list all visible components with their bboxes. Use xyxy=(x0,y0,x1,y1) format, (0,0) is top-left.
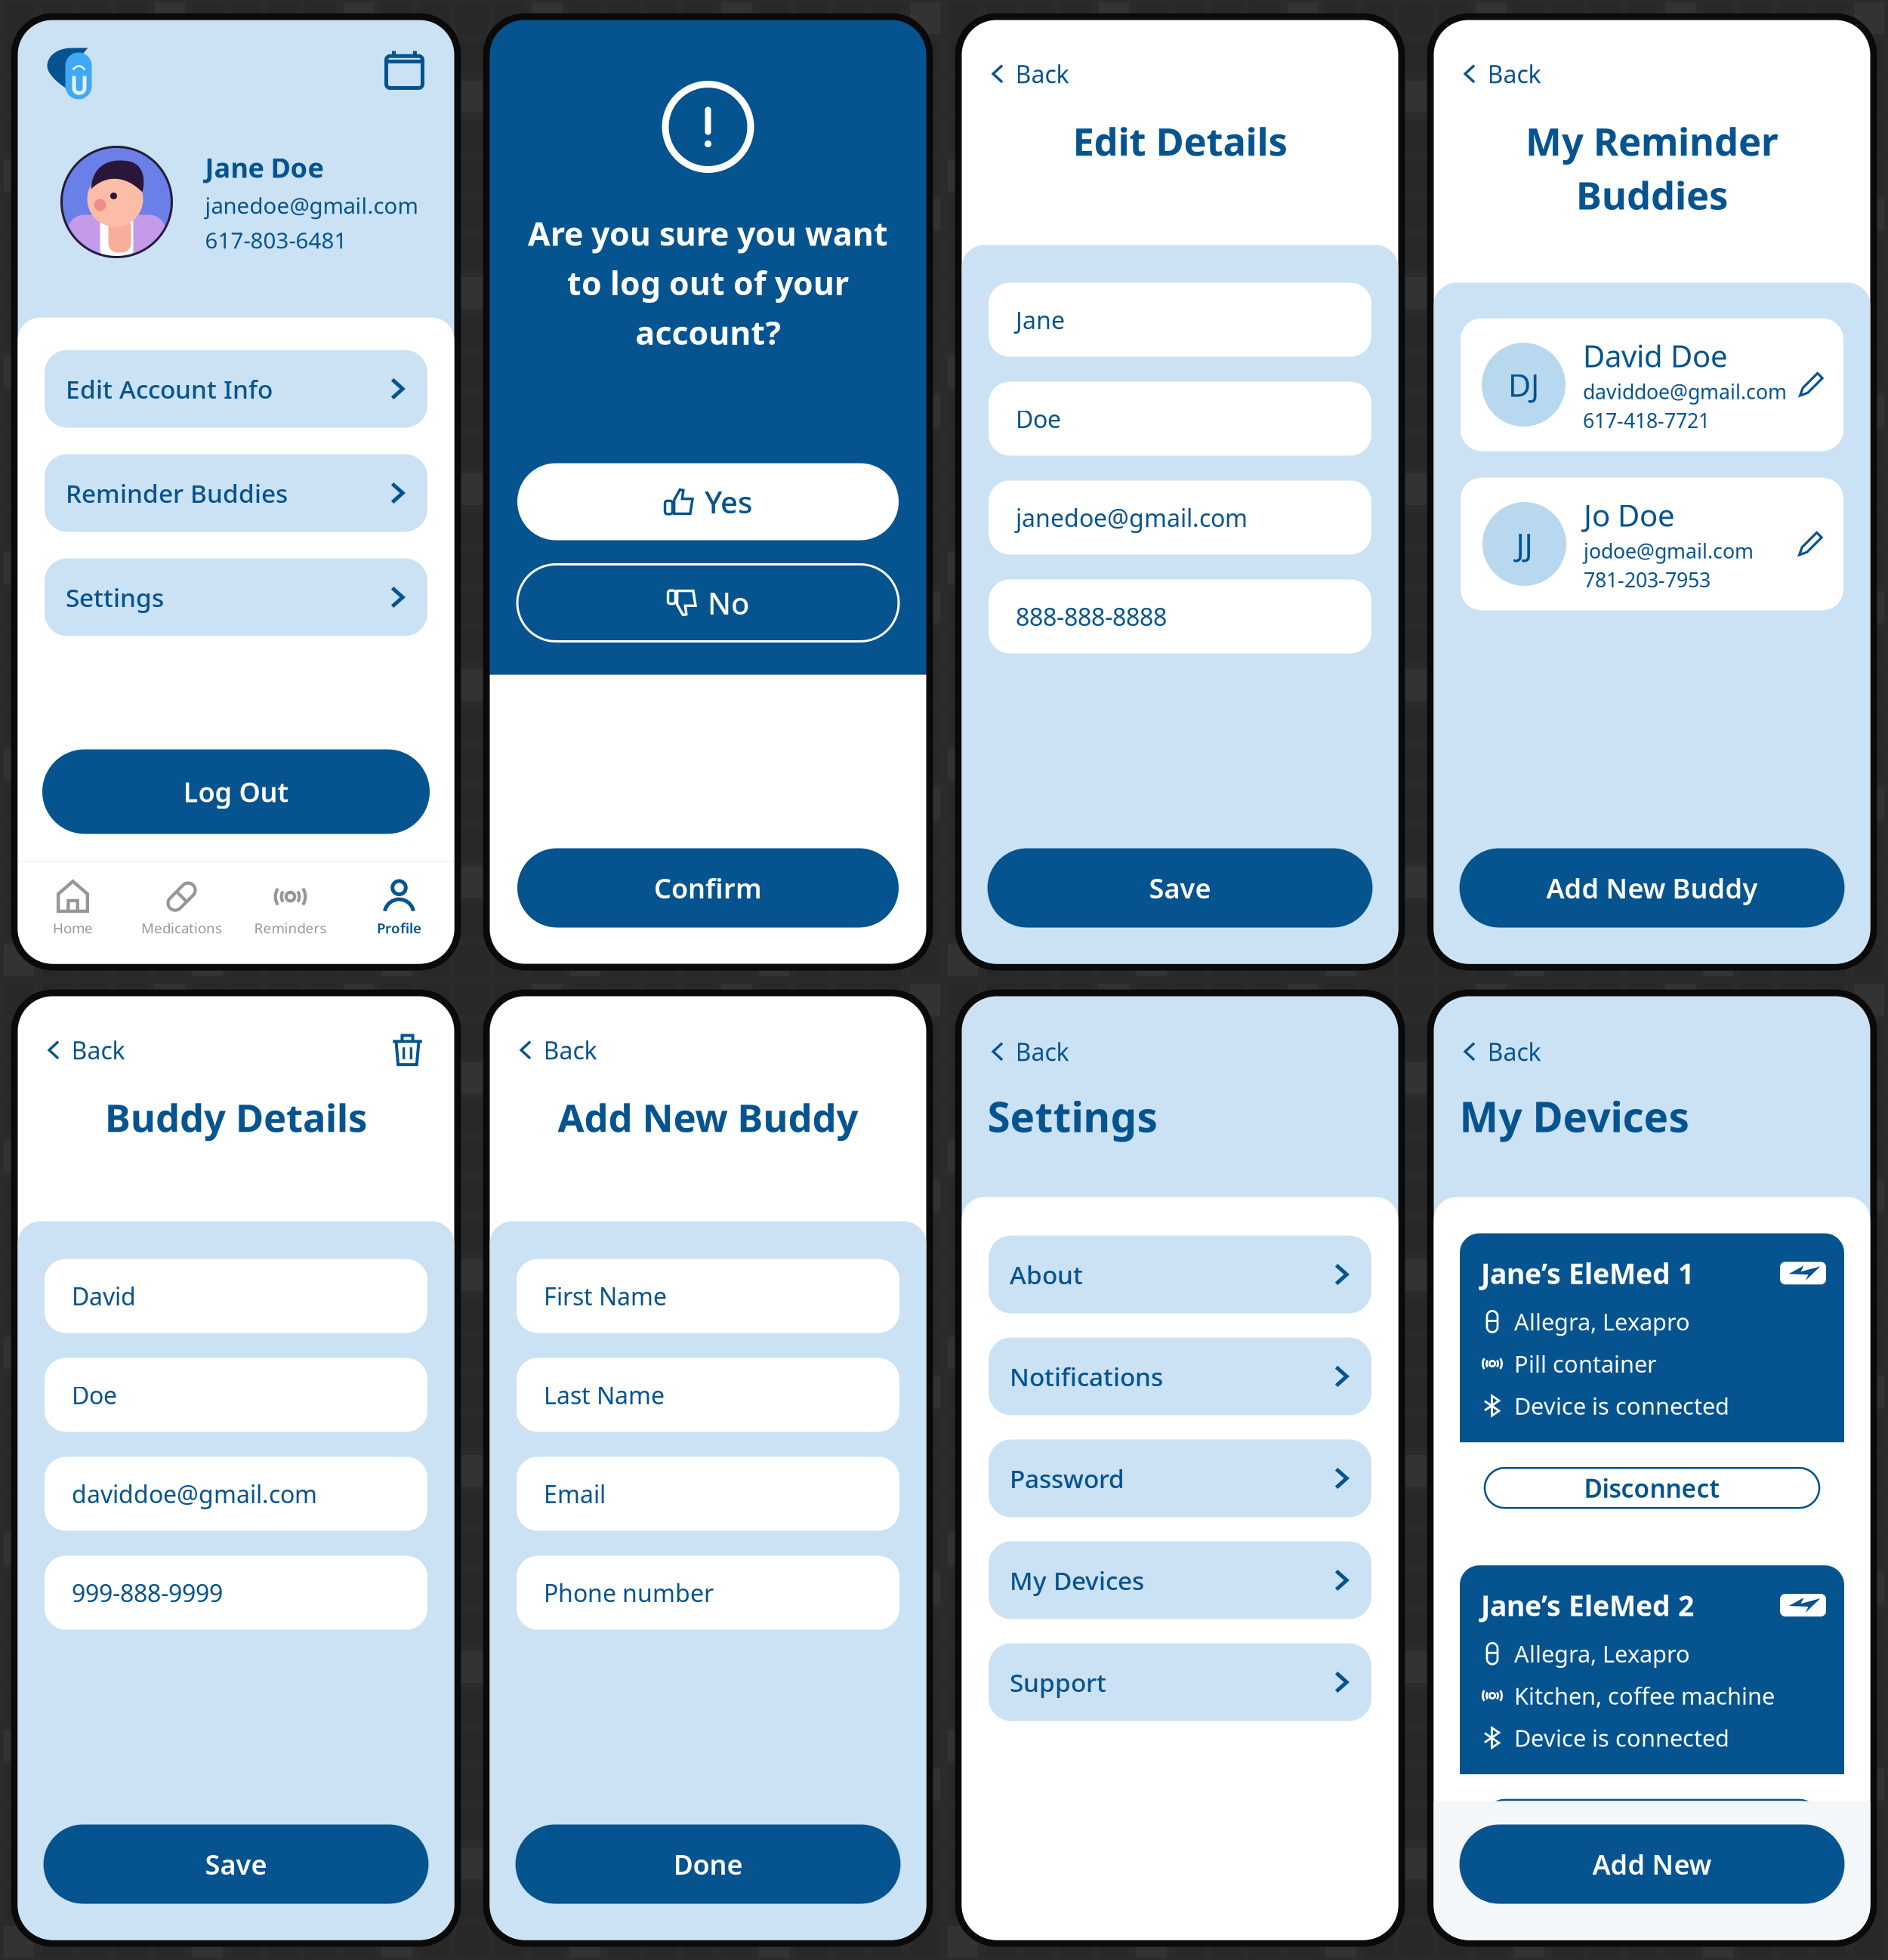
staticText: Pill container xyxy=(1514,1348,1657,1379)
staticText: Profile xyxy=(377,919,421,937)
staticText: Allegra, Lexapro xyxy=(1514,1306,1690,1337)
button[interactable]: Calendar xyxy=(386,52,423,88)
button[interactable]: DJ xyxy=(1461,318,1843,451)
staticText: Save xyxy=(1149,870,1211,906)
staticText: Notifications xyxy=(1010,1360,1163,1393)
button[interactable]: Edit buddy xyxy=(1793,367,1829,403)
staticText: Add New Buddy xyxy=(1546,870,1758,906)
button[interactable]: Add New Buddy xyxy=(1459,848,1845,928)
staticText: Support xyxy=(1010,1665,1106,1699)
staticText: Settings xyxy=(66,581,164,614)
staticText: Phone number xyxy=(544,1577,714,1609)
button[interactable]: Profile xyxy=(345,872,453,945)
staticText: daviddoe@gmail.com xyxy=(1583,378,1787,405)
button[interactable]: Back xyxy=(1459,1032,1541,1071)
staticText: janedoe@gmail.com xyxy=(205,191,418,220)
staticText: Disconnect xyxy=(1584,1803,1720,1837)
button[interactable]: About xyxy=(989,1236,1371,1313)
button[interactable]: Save xyxy=(987,848,1373,928)
button[interactable]: Reminder Buddies xyxy=(45,454,427,532)
staticText: David Doe xyxy=(1583,336,1728,376)
staticText: Doe xyxy=(1016,403,1061,435)
button[interactable]: No xyxy=(517,564,899,641)
staticText: No xyxy=(708,583,749,623)
staticText: Back xyxy=(1487,58,1541,90)
staticText: Back xyxy=(543,1034,597,1066)
button[interactable]: My Devices xyxy=(989,1541,1371,1619)
button[interactable]: EleMed logo xyxy=(45,43,92,97)
staticText: Device is connected xyxy=(1514,1722,1729,1753)
staticText: account? xyxy=(636,311,780,354)
staticText: My Reminder xyxy=(1526,116,1778,166)
staticText: janedoe@gmail.com xyxy=(1016,502,1248,534)
staticText: My Devices xyxy=(1459,1089,1689,1144)
staticText: Jo Doe xyxy=(1584,495,1675,535)
staticText: Log Out xyxy=(183,774,289,810)
button[interactable]: Edit Account Info xyxy=(45,350,427,428)
button[interactable]: Log Out xyxy=(42,749,430,834)
staticText: Are you sure you want xyxy=(528,212,888,255)
button[interactable]: Disconnect xyxy=(1485,1800,1819,1840)
staticText: Jane Doe xyxy=(205,149,324,185)
staticText: Add New Buddy xyxy=(558,1092,858,1143)
staticText: Email xyxy=(544,1478,606,1510)
staticText: Back xyxy=(71,1034,125,1066)
button[interactable]: JJ xyxy=(1461,478,1843,610)
staticText: 888-888-8888 xyxy=(1016,600,1167,633)
button[interactable]: Delete xyxy=(391,1033,424,1067)
staticText: Yes xyxy=(705,482,752,522)
button[interactable]: Home xyxy=(19,872,127,945)
staticText: 617-803-6481 xyxy=(205,225,347,255)
button[interactable]: Password xyxy=(989,1439,1371,1517)
staticText: Buddy Details xyxy=(105,1092,367,1143)
staticText: Confirm xyxy=(654,870,762,906)
staticText: Reminder Buddies xyxy=(66,476,288,510)
button[interactable]: Back xyxy=(1459,55,1541,93)
button[interactable]: Back xyxy=(987,1032,1069,1071)
staticText: jodoe@gmail.com xyxy=(1584,537,1754,564)
staticText: Reminders xyxy=(254,919,327,937)
staticText: About xyxy=(1010,1258,1083,1291)
staticText: Done xyxy=(673,1846,743,1882)
staticText: Settings xyxy=(987,1089,1157,1144)
staticText: Edit Details xyxy=(1073,116,1287,166)
button[interactable]: Save xyxy=(43,1824,429,1904)
button[interactable]: Back xyxy=(987,55,1069,93)
staticText: daviddoe@gmail.com xyxy=(72,1478,317,1510)
staticText: 781-203-7953 xyxy=(1584,566,1711,593)
staticText: My Devices xyxy=(1010,1564,1144,1597)
staticText: Last Name xyxy=(544,1379,665,1411)
button[interactable]: Notifications xyxy=(989,1337,1371,1415)
staticText: Doe xyxy=(72,1379,117,1411)
staticText: Device is connected xyxy=(1514,1390,1729,1421)
button[interactable]: Add New xyxy=(1459,1824,1845,1904)
button[interactable]: Settings xyxy=(45,558,427,636)
button[interactable]: Disconnect xyxy=(1485,1468,1819,1508)
staticText: Medications xyxy=(141,919,222,937)
staticText: Save xyxy=(205,1846,267,1882)
button[interactable]: Done xyxy=(515,1824,901,1904)
button[interactable]: Confirm xyxy=(517,848,899,928)
button[interactable]: Back xyxy=(43,1031,125,1069)
staticText: JJ xyxy=(1516,523,1533,565)
button[interactable]: Yes xyxy=(517,463,899,540)
staticText: Disconnect xyxy=(1584,1471,1720,1505)
button[interactable]: Back xyxy=(515,1031,597,1069)
button[interactable]: Edit buddy xyxy=(1792,526,1828,562)
staticText: First Name xyxy=(544,1280,667,1312)
staticText: Add New xyxy=(1592,1846,1712,1882)
staticText: 999-888-9999 xyxy=(72,1577,223,1609)
staticText: Home xyxy=(53,919,93,937)
staticText: Edit Account Info xyxy=(66,372,273,406)
staticText: Allegra, Lexapro xyxy=(1514,1638,1690,1669)
staticText: David xyxy=(72,1280,136,1312)
staticText: Kitchen, coffee machine xyxy=(1514,1680,1775,1711)
staticText: Back xyxy=(1015,58,1069,90)
staticText: Back xyxy=(1487,1035,1541,1068)
button[interactable]: Reminders xyxy=(236,872,345,945)
button[interactable]: Support xyxy=(989,1643,1371,1721)
staticText: 617-418-7721 xyxy=(1583,407,1710,434)
staticText: Back xyxy=(1015,1035,1069,1068)
staticText: to log out of your xyxy=(567,261,849,304)
button[interactable]: Medications xyxy=(127,872,236,945)
